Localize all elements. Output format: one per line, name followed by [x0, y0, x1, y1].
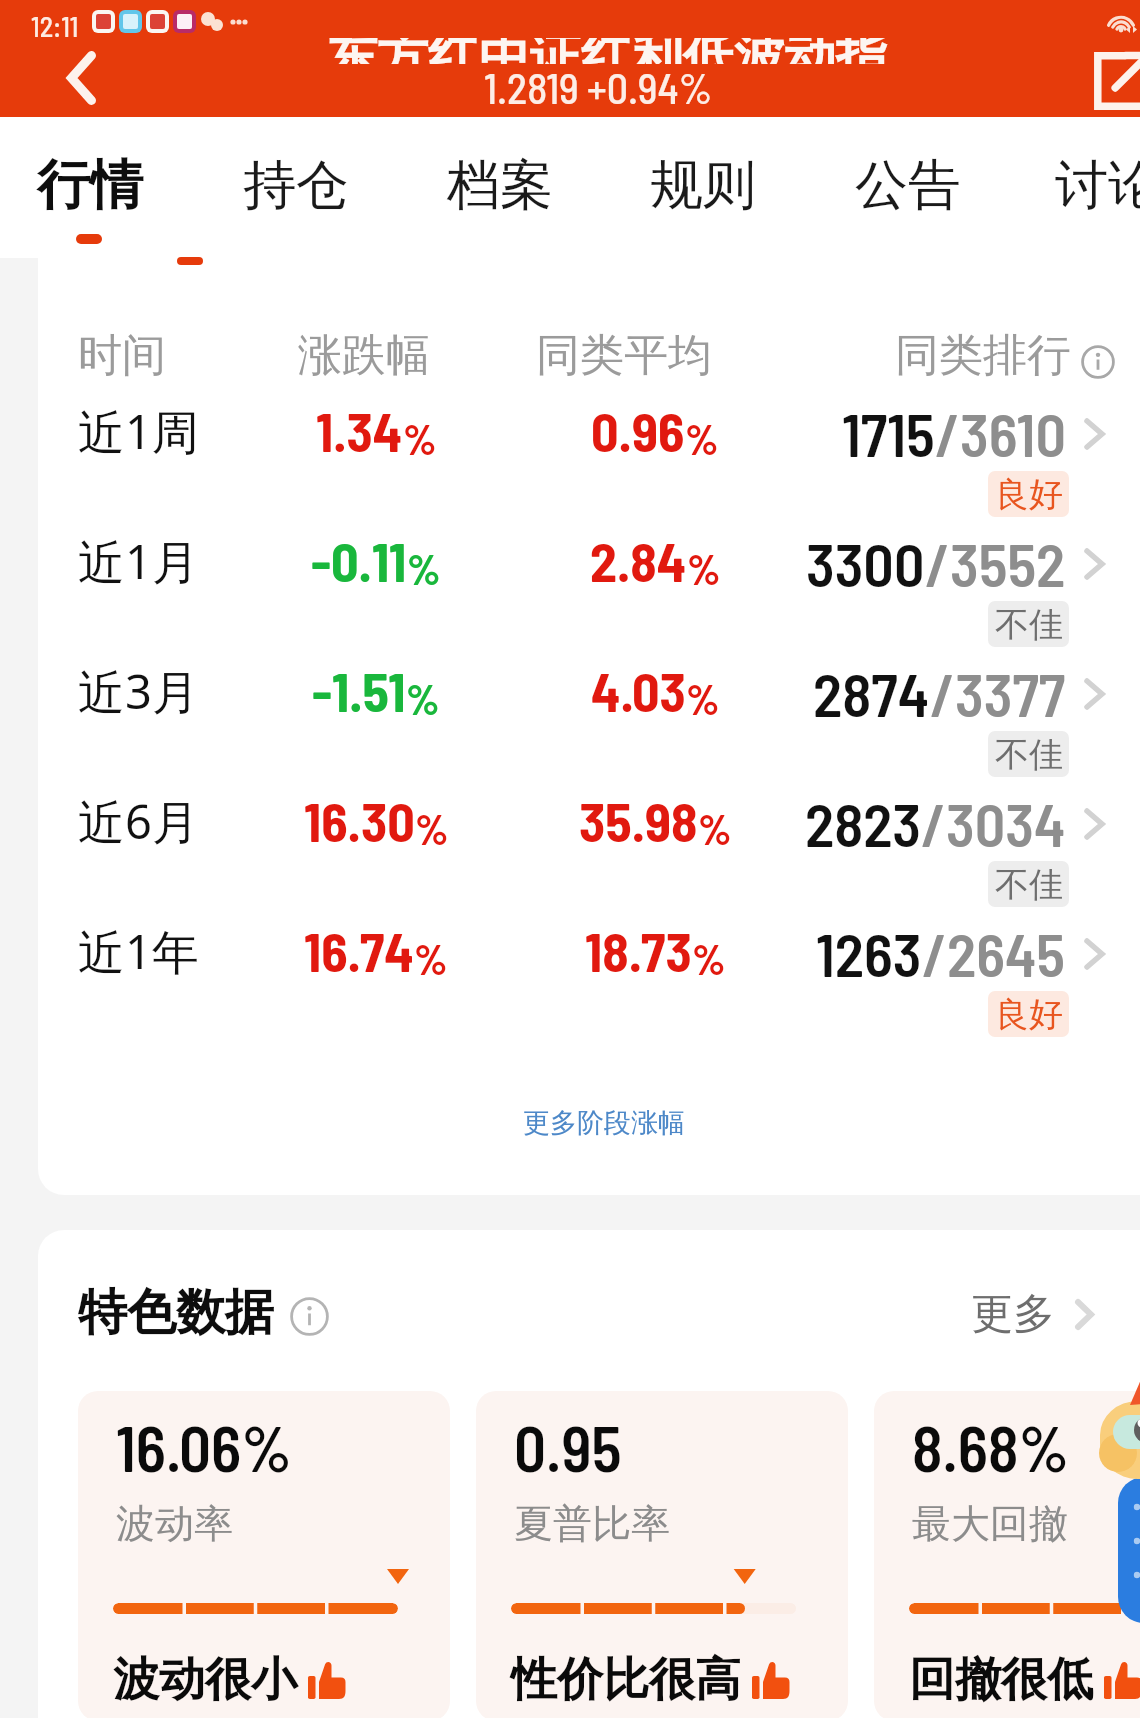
button[interactable]: 8.68%	[874, 1391, 1140, 1718]
staticText: 1.34	[316, 398, 403, 463]
staticText: %	[407, 543, 441, 593]
staticText: 性价比很高	[511, 1651, 741, 1709]
staticText: %	[406, 673, 440, 723]
button[interactable]: 更多阶段涨幅	[523, 1106, 685, 1140]
button[interactable]: 档案	[429, 140, 571, 230]
staticText: -0.11	[311, 528, 407, 593]
staticText: 东方红中证红利低波动指	[326, 38, 887, 64]
staticText: 档案	[447, 152, 553, 219]
staticText: 特色数据	[78, 1282, 274, 1344]
staticText: %	[414, 933, 448, 983]
button[interactable]: 行情	[19, 140, 161, 230]
staticText: 16.06%	[116, 1409, 292, 1485]
staticText: 持仓	[243, 152, 349, 219]
staticText: %	[687, 543, 721, 593]
staticText: %	[685, 413, 719, 463]
button[interactable]: 近1月	[38, 540, 1140, 670]
staticText: /3034	[921, 787, 1066, 859]
staticText: 更多	[971, 1288, 1055, 1341]
staticText: /2645	[922, 917, 1066, 989]
button[interactable]: 近1周	[38, 410, 1140, 540]
staticText: 16.74	[304, 918, 414, 983]
staticText: 18.73	[585, 918, 692, 983]
staticText: 不佳	[995, 733, 1063, 776]
staticText: 时间	[78, 328, 166, 383]
staticText: 公告	[855, 152, 961, 219]
staticText: 2823	[805, 787, 921, 859]
staticText: 涨跌幅	[298, 328, 430, 383]
button[interactable]: 0.95	[476, 1391, 848, 1718]
button[interactable]: 持仓	[225, 140, 367, 230]
staticText: 12:11	[31, 9, 79, 43]
staticText: 近3月	[78, 659, 199, 723]
staticText: 行情	[37, 152, 143, 219]
staticText: 良好	[995, 993, 1063, 1036]
staticText: 4.03	[591, 658, 686, 723]
staticText: 规则	[650, 152, 756, 219]
staticText: 2874	[813, 657, 930, 729]
staticText: 16.30	[304, 788, 415, 853]
staticText: 更多阶段涨幅	[523, 1106, 685, 1140]
staticText: 1715	[842, 397, 935, 469]
button[interactable]: 近3月	[38, 670, 1140, 800]
button[interactable]: 讨论	[1037, 140, 1140, 230]
staticText: %	[692, 933, 726, 983]
staticText: 1.2819 +0.94%	[484, 62, 713, 112]
staticText: 1263	[816, 917, 922, 989]
staticText: %	[698, 803, 732, 853]
staticText: 8.68%	[912, 1409, 1069, 1485]
staticText: 近1周	[78, 399, 199, 463]
staticText: 2.84	[590, 528, 687, 593]
staticText: 0.96	[591, 398, 685, 463]
button[interactable]: 更多	[971, 1288, 1094, 1341]
staticText: %	[403, 413, 437, 463]
staticText: 波动率	[116, 1499, 233, 1548]
staticText: /3610	[935, 397, 1066, 469]
staticText: 近6月	[78, 789, 199, 853]
staticText: 同类排行	[895, 328, 1071, 383]
staticText: /3552	[925, 527, 1066, 599]
staticText: 同类平均	[536, 328, 712, 383]
button[interactable]: Share	[1060, 34, 1140, 122]
staticText: 最大回撤	[912, 1499, 1068, 1548]
staticText: 不佳	[995, 863, 1063, 906]
button[interactable]: 16.06%	[78, 1391, 450, 1718]
staticText: 回撤很低	[909, 1651, 1093, 1709]
button[interactable]: 公告	[837, 140, 979, 230]
staticText: -1.51	[312, 658, 406, 723]
button[interactable]: 近1年	[38, 930, 1140, 1060]
staticText: %	[686, 673, 720, 723]
staticText: 0.95	[514, 1409, 622, 1485]
staticText: 近1年	[78, 919, 199, 983]
staticText: 35.98	[579, 788, 698, 853]
button[interactable]: 规则	[632, 140, 774, 230]
staticText: 良好	[995, 473, 1063, 516]
staticText: 近1月	[78, 529, 199, 593]
staticText: %	[415, 803, 449, 853]
staticText: 夏普比率	[514, 1499, 670, 1548]
button[interactable]: 近6月	[38, 800, 1140, 930]
staticText: 波动很小	[113, 1651, 297, 1709]
button[interactable]: Assistant	[1090, 1375, 1140, 1635]
staticText: 讨论	[1055, 152, 1140, 219]
staticText: 3300	[806, 527, 925, 599]
staticText: 不佳	[995, 603, 1063, 646]
button[interactable]: Back	[28, 42, 108, 118]
staticText: /3377	[930, 657, 1066, 729]
